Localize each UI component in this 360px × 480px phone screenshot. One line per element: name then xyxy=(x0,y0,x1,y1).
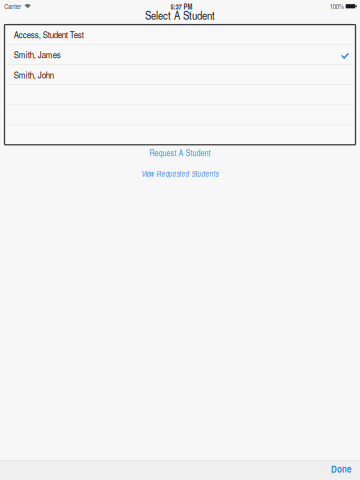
button[interactable]: Done xyxy=(322,461,360,480)
button[interactable]: Smith, James xyxy=(4,45,355,64)
button[interactable]: Access, Student Test xyxy=(4,25,355,44)
staticText: 5:37 PM xyxy=(170,2,192,12)
button[interactable]: Request A Student xyxy=(0,146,360,159)
staticText: Request A Student xyxy=(149,147,210,159)
staticText: Done xyxy=(331,462,351,476)
staticText: 100% xyxy=(330,1,344,11)
staticText: View Requested Students xyxy=(141,168,218,179)
staticText: Access, Student Test xyxy=(14,28,84,41)
staticText: Smith, John xyxy=(14,68,54,81)
staticText: Smith, James xyxy=(14,48,61,61)
staticText: Carrier xyxy=(4,1,21,11)
button[interactable]: View Requested Students xyxy=(0,168,360,180)
staticText: Select A Student xyxy=(145,7,215,23)
button[interactable]: Smith, John xyxy=(4,65,355,84)
